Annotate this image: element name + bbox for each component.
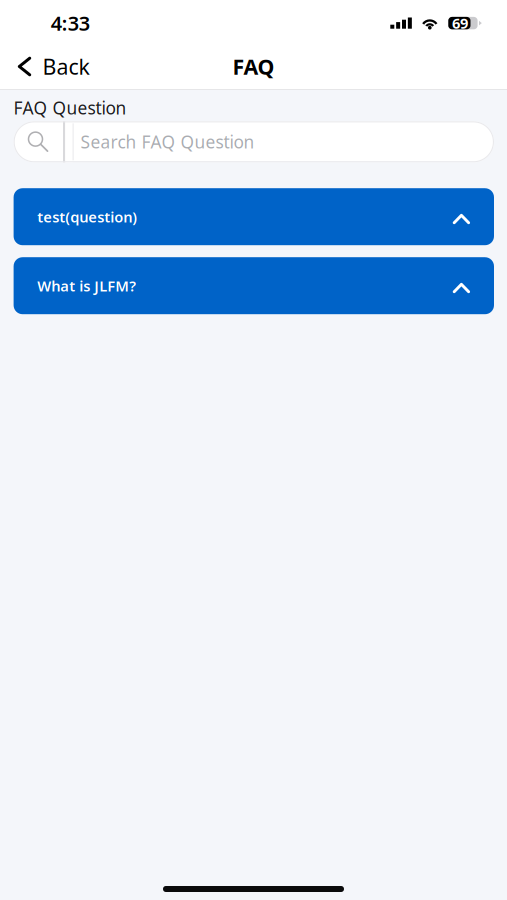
button[interactable]: Back [0, 44, 103, 89]
button[interactable]: test(question) [14, 188, 494, 245]
button[interactable]: Search FAQ Question [14, 121, 494, 162]
staticText: Search FAQ Question [81, 130, 255, 153]
staticText: What is JLFM? [37, 276, 136, 295]
staticText: FAQ [232, 52, 274, 81]
staticText: FAQ Question [14, 96, 127, 119]
staticText: test(question) [37, 207, 137, 226]
staticText: 4:33 [51, 10, 90, 36]
staticText: Back [42, 52, 89, 81]
button[interactable]: What is JLFM? [14, 257, 494, 314]
staticText: 69 [452, 13, 468, 33]
